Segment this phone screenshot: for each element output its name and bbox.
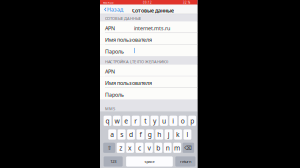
staticText: internet.mts.ru bbox=[134, 24, 170, 32]
button[interactable]: r bbox=[132, 116, 140, 126]
button[interactable]: y bbox=[151, 116, 158, 126]
staticText: f bbox=[139, 130, 141, 139]
staticText: return bbox=[180, 159, 191, 164]
button[interactable]: Пароль bbox=[100, 88, 197, 100]
staticText: n bbox=[166, 143, 170, 152]
staticText: p bbox=[190, 116, 194, 125]
staticText: g bbox=[148, 130, 152, 139]
button[interactable]: o bbox=[179, 116, 187, 126]
button[interactable]: l bbox=[183, 129, 191, 140]
staticText: m bbox=[174, 143, 180, 152]
button[interactable]: j bbox=[165, 129, 172, 140]
staticText: 32 % bbox=[183, 1, 190, 4]
button[interactable]: b bbox=[154, 143, 162, 153]
staticText: APN bbox=[105, 68, 115, 75]
staticText: s bbox=[120, 130, 123, 139]
staticText: t bbox=[144, 116, 146, 125]
button[interactable]: space bbox=[126, 156, 173, 167]
staticText: ⇧ bbox=[107, 145, 111, 151]
staticText: u bbox=[162, 116, 166, 125]
staticText: h bbox=[157, 130, 161, 139]
staticText: ⌫ bbox=[184, 145, 192, 151]
staticText: 123 bbox=[110, 159, 116, 164]
staticText: i bbox=[172, 116, 174, 125]
button[interactable]: d bbox=[127, 129, 135, 140]
button[interactable]: q bbox=[104, 116, 111, 126]
button[interactable]: c bbox=[136, 143, 143, 153]
button[interactable]: p bbox=[188, 116, 196, 126]
button[interactable]: t bbox=[141, 116, 149, 126]
button[interactable]: x bbox=[126, 143, 134, 153]
staticText: СОТОВЫЕ ДАННЫЕ bbox=[105, 16, 141, 21]
button[interactable]: Имя пользователя bbox=[100, 33, 197, 45]
staticText: k bbox=[176, 130, 180, 139]
button[interactable]: z bbox=[117, 143, 125, 153]
staticText: q bbox=[105, 116, 109, 125]
button[interactable]: g bbox=[146, 129, 154, 140]
button[interactable]: return bbox=[175, 156, 195, 167]
button[interactable]: n bbox=[164, 143, 172, 153]
staticText: r bbox=[134, 116, 137, 125]
button[interactable]: u bbox=[160, 116, 168, 126]
button[interactable]: e bbox=[122, 116, 130, 126]
button[interactable]: s bbox=[118, 129, 125, 140]
button[interactable]: m bbox=[173, 143, 181, 153]
staticText: 09:12 bbox=[143, 1, 152, 4]
staticText: e bbox=[124, 116, 128, 125]
staticText: APN bbox=[105, 24, 115, 32]
staticText: Пароль bbox=[105, 91, 124, 98]
staticText: MMS bbox=[105, 106, 115, 111]
button[interactable]: 123 bbox=[104, 156, 123, 167]
staticText: d bbox=[129, 130, 133, 139]
button[interactable]: k bbox=[174, 129, 182, 140]
button[interactable]: h bbox=[155, 129, 163, 140]
button[interactable]: APN bbox=[100, 21, 197, 33]
staticText: y bbox=[153, 116, 156, 125]
staticText: Имя пользователя bbox=[105, 79, 152, 86]
staticText: Сотовые данные bbox=[132, 7, 174, 14]
staticText: x bbox=[128, 143, 132, 152]
button[interactable]: Назад bbox=[100, 5, 125, 14]
staticText: НАСТРОЙКА LTE (ПО ЖЕЛАНИЮ) bbox=[105, 59, 168, 64]
button[interactable]: Имя пользователя bbox=[100, 76, 197, 88]
staticText: a bbox=[110, 130, 114, 139]
button[interactable]: Пароль bbox=[100, 45, 197, 56]
staticText: space bbox=[144, 159, 154, 164]
button[interactable]: w bbox=[113, 116, 121, 126]
staticText: l bbox=[186, 130, 188, 139]
button[interactable]: ⇧ bbox=[103, 143, 115, 153]
button[interactable]: i bbox=[169, 116, 177, 126]
staticText: c bbox=[138, 143, 141, 152]
staticText: Пароль bbox=[105, 48, 124, 55]
staticText: o bbox=[181, 116, 185, 125]
staticText: v bbox=[147, 143, 150, 152]
staticText: b bbox=[156, 143, 160, 152]
staticText: MTS RUS bbox=[103, 1, 113, 4]
button[interactable]: f bbox=[136, 129, 144, 140]
button[interactable]: APN bbox=[100, 65, 197, 76]
button[interactable]: ⌫ bbox=[183, 143, 194, 153]
staticText: Назад bbox=[107, 6, 123, 13]
staticText: z bbox=[119, 143, 122, 152]
button[interactable]: a bbox=[108, 129, 116, 140]
staticText: w bbox=[114, 116, 119, 125]
staticText: j bbox=[168, 130, 170, 139]
button[interactable]: v bbox=[145, 143, 153, 153]
staticText: Имя пользователя bbox=[105, 36, 152, 43]
